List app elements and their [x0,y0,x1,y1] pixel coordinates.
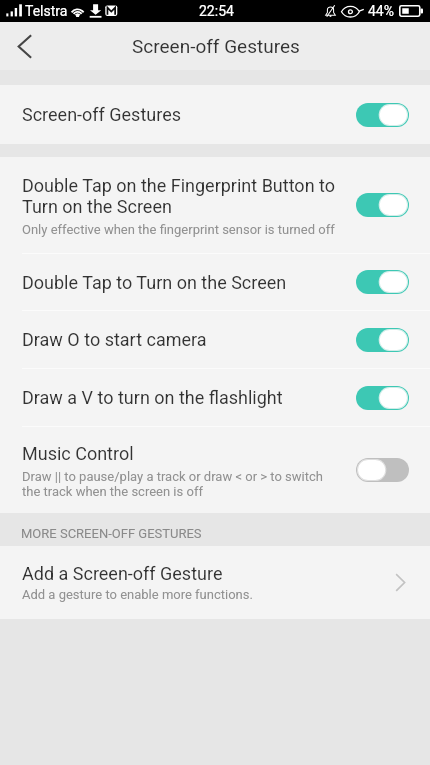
staticText: Draw a V to turn on the flashlight [22,387,283,408]
button[interactable]: Draw O to start camera [0,311,430,368]
staticText: Only effective when the fingerprint sens… [22,222,335,237]
button[interactable]: Toggle on [356,270,409,294]
staticText: Telstra [25,3,68,19]
staticText: Double Tap to Turn on the Screen [22,272,287,293]
staticText: Music Control [22,443,134,464]
button[interactable]: Draw a V to turn on the flashlight [0,369,430,426]
button[interactable]: Toggle on [356,328,409,352]
staticText: Double Tap on the Fingerprint Button to … [22,175,348,217]
button[interactable]: Toggle off [356,458,409,482]
button[interactable]: Double Tap on the Fingerprint Button to … [0,157,430,253]
button[interactable]: Back [0,22,48,70]
button[interactable]: Double Tap to Turn on the Screen [0,254,430,310]
staticText: Draw O to start camera [22,329,207,350]
staticText: 22:54 [199,3,234,19]
button[interactable]: Screen-off Gestures [0,85,430,144]
staticText: MORE SCREEN-OFF GESTURES [21,526,202,541]
button[interactable]: Toggle on [356,193,409,217]
button[interactable]: Add a Screen-off Gesture [0,546,430,619]
staticText: 44% [368,3,394,19]
staticText: Add a Screen-off Gesture [22,563,223,584]
staticText: Draw || to pause/play a track or draw < … [22,469,323,500]
staticText: Screen-off Gestures [22,104,356,125]
button[interactable]: Toggle on [356,103,409,127]
button[interactable]: Toggle on [356,386,409,410]
button[interactable]: Music Control [0,427,430,513]
staticText: Screen-off Gestures [132,35,300,57]
staticText: Add a gesture to enable more functions. [22,587,253,602]
